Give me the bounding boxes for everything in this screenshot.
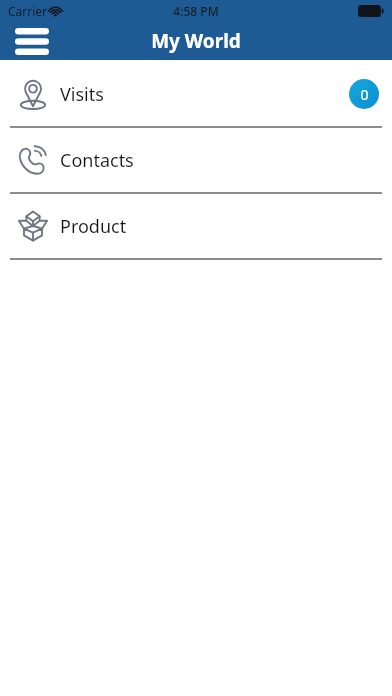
staticText: Visits (60, 82, 104, 107)
button[interactable]: Open navigation menu (10, 24, 54, 58)
staticText: 4:58 PM (173, 3, 219, 19)
staticText: Contacts (60, 148, 134, 173)
staticText: My World (151, 28, 241, 54)
staticText: Carrier (8, 3, 48, 19)
staticText: Product (60, 214, 127, 239)
button[interactable]: Product (0, 194, 392, 258)
staticText: 0 (360, 85, 369, 104)
button[interactable]: Visits (0, 62, 392, 126)
button[interactable]: Contacts (0, 128, 392, 192)
